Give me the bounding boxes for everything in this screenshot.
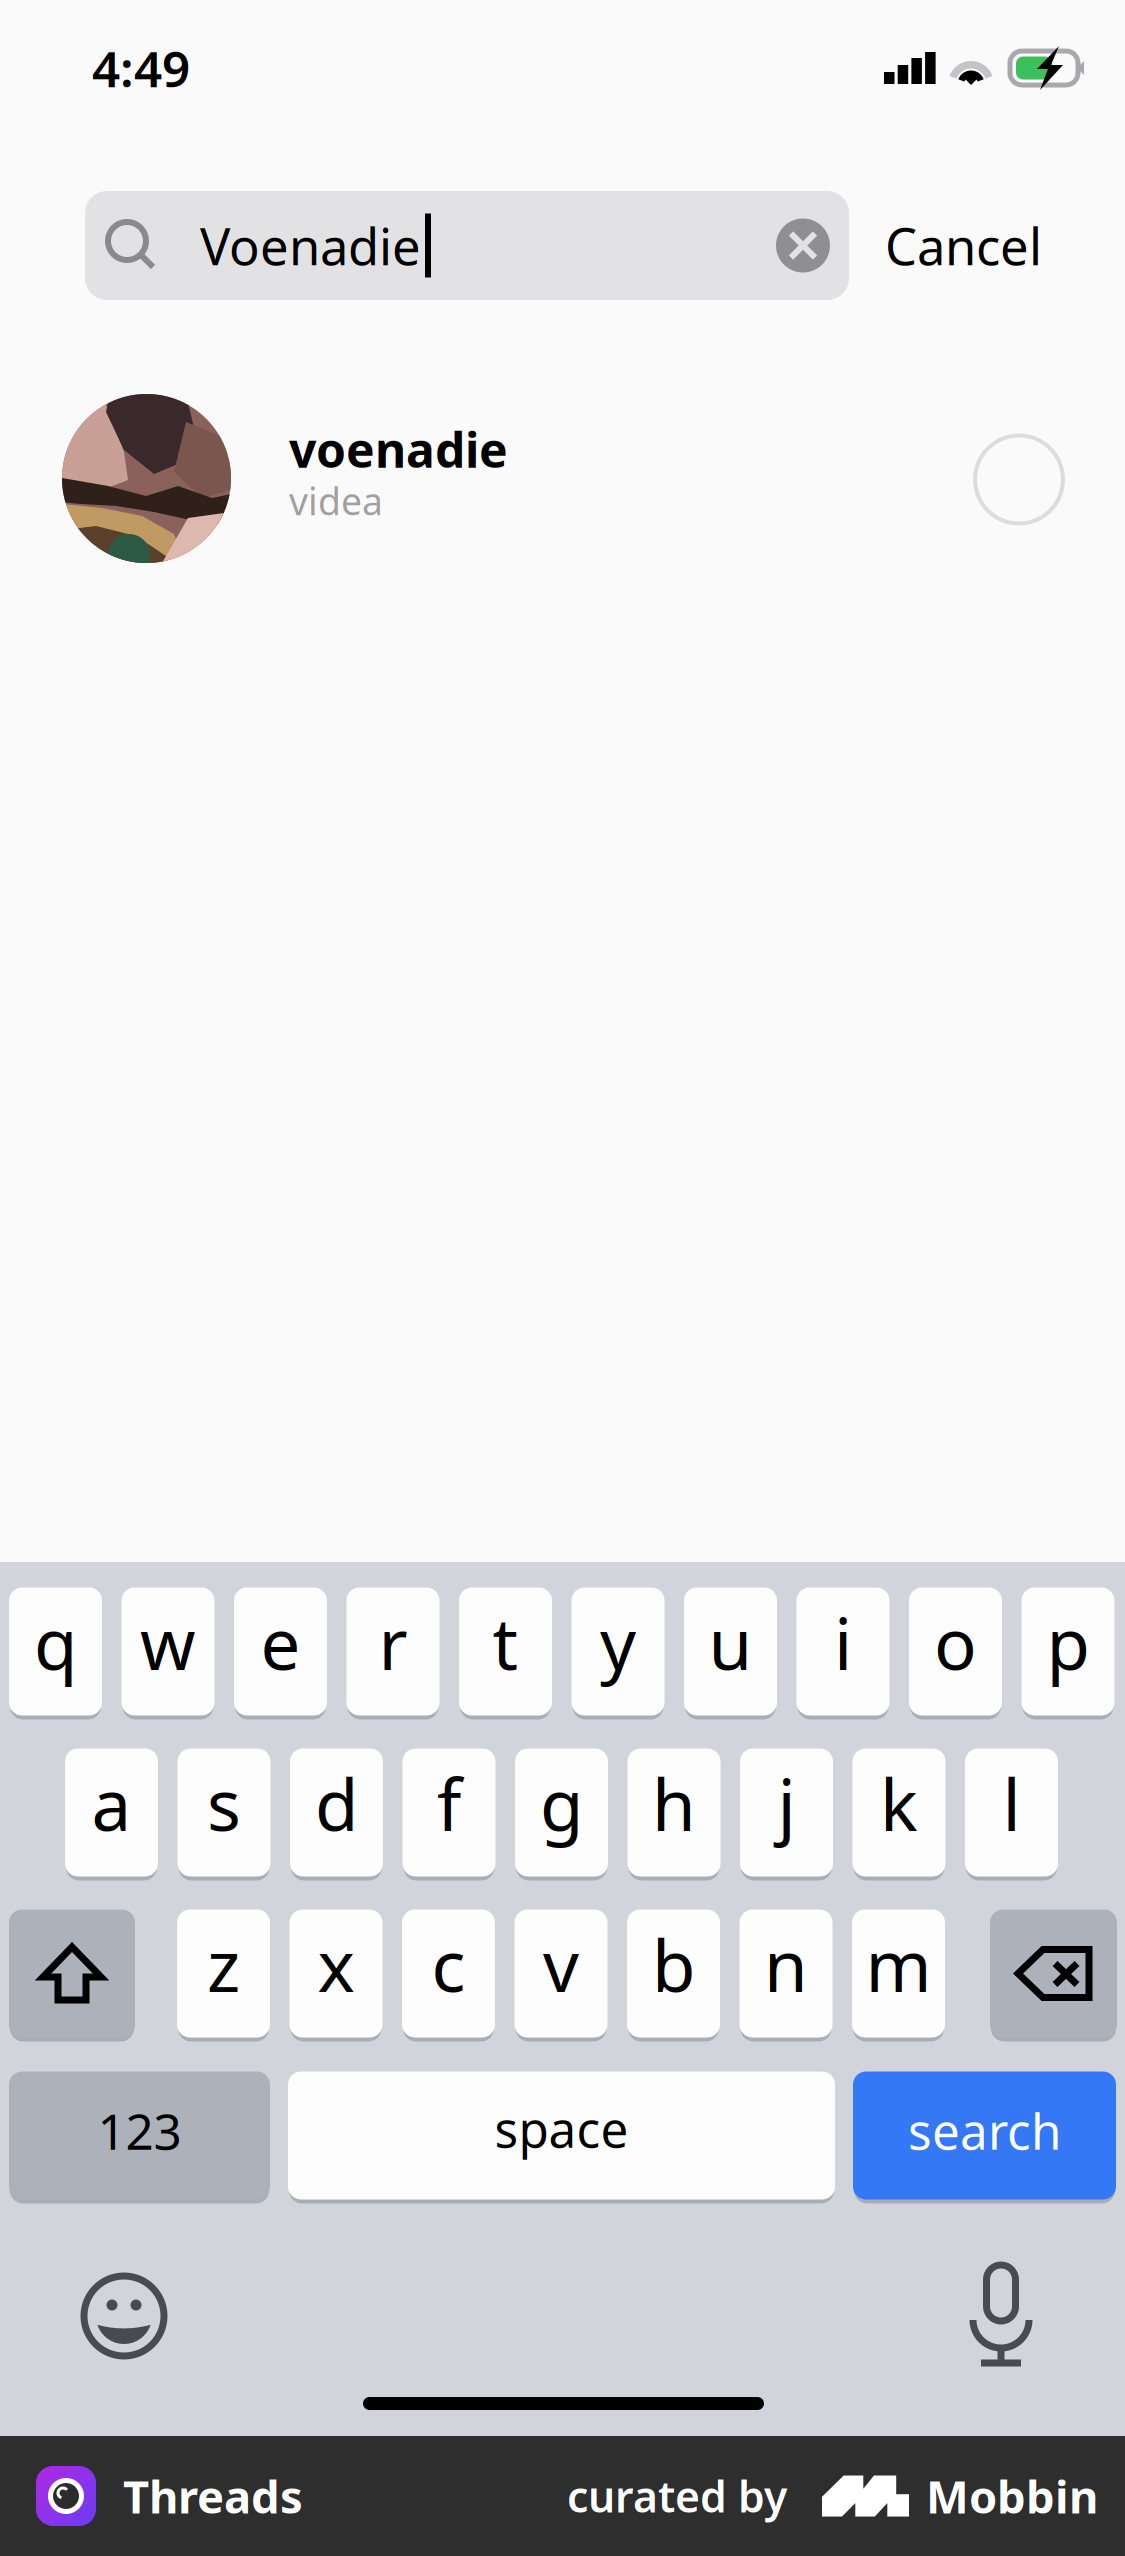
- staticText: w: [140, 1596, 196, 1689]
- button[interactable]: t: [459, 1585, 552, 1717]
- staticText: i: [834, 1596, 852, 1689]
- staticText: Cancel: [885, 212, 1042, 279]
- staticText: s: [207, 1757, 241, 1850]
- staticText: e: [260, 1596, 300, 1689]
- button[interactable]: space: [288, 2069, 835, 2201]
- staticText: h: [652, 1757, 696, 1850]
- staticText: Mobbin: [926, 2466, 1098, 2526]
- staticText: videa: [289, 476, 383, 526]
- staticText: l: [1002, 1757, 1020, 1850]
- button[interactable]: f: [402, 1746, 495, 1878]
- staticText: n: [764, 1918, 808, 2011]
- button[interactable]: e: [234, 1585, 327, 1717]
- button[interactable]: y: [571, 1585, 664, 1717]
- button[interactable]: Cancel: [849, 191, 1125, 300]
- button[interactable]: q: [9, 1585, 102, 1717]
- button[interactable]: o: [909, 1585, 1002, 1717]
- staticText: voenadie: [289, 417, 508, 481]
- button[interactable]: g: [515, 1746, 608, 1878]
- button[interactable]: Dictation: [972, 2266, 1030, 2366]
- button[interactable]: x: [289, 1907, 382, 2039]
- button[interactable]: r: [346, 1585, 439, 1717]
- button[interactable]: k: [852, 1746, 945, 1878]
- staticText: d: [315, 1757, 358, 1850]
- staticText: x: [317, 1918, 354, 2011]
- staticText: q: [34, 1596, 77, 1689]
- button[interactable]: l: [965, 1746, 1058, 1878]
- staticText: curated by: [567, 2468, 787, 2524]
- button[interactable]: Emoji keyboard: [81, 2273, 167, 2359]
- staticText: b: [652, 1918, 695, 2011]
- button[interactable]: Delete: [990, 1907, 1117, 2039]
- staticText: p: [1046, 1596, 1089, 1689]
- staticText: m: [865, 1918, 931, 2011]
- staticText: Threads: [123, 2466, 303, 2526]
- staticText: g: [540, 1757, 583, 1850]
- button[interactable]: s: [177, 1746, 270, 1878]
- staticText: o: [934, 1596, 977, 1689]
- button[interactable]: m: [852, 1907, 945, 2039]
- button[interactable]: b: [627, 1907, 720, 2039]
- button[interactable]: z: [177, 1907, 270, 2039]
- staticText: y: [600, 1596, 636, 1689]
- button[interactable]: c: [402, 1907, 495, 2039]
- staticText: Voenadie: [200, 212, 421, 279]
- button[interactable]: a: [65, 1746, 158, 1878]
- staticText: 123: [97, 2098, 181, 2163]
- button[interactable]: 123: [9, 2069, 270, 2201]
- button[interactable]: v: [514, 1907, 607, 2039]
- button[interactable]: n: [739, 1907, 832, 2039]
- staticText: a: [91, 1757, 131, 1850]
- staticText: j: [777, 1757, 795, 1850]
- staticText: t: [492, 1596, 518, 1689]
- button[interactable]: Clear text: [761, 195, 845, 295]
- staticText: r: [378, 1596, 407, 1689]
- staticText: u: [708, 1596, 752, 1689]
- staticText: f: [437, 1757, 461, 1850]
- button[interactable]: u: [684, 1585, 777, 1717]
- staticText: 4:49: [92, 35, 190, 101]
- button[interactable]: i: [796, 1585, 889, 1717]
- staticText: k: [880, 1757, 918, 1850]
- button[interactable]: search: [853, 2069, 1116, 2201]
- staticText: c: [431, 1918, 465, 2011]
- button[interactable]: d: [290, 1746, 383, 1878]
- button[interactable]: h: [627, 1746, 720, 1878]
- button[interactable]: w: [121, 1585, 214, 1717]
- staticText: z: [207, 1918, 240, 2011]
- button[interactable]: p: [1021, 1585, 1114, 1717]
- staticText: v: [543, 1918, 579, 2011]
- staticText: space: [494, 2096, 628, 2161]
- button[interactable]: voenadie: [0, 394, 1125, 563]
- staticText: search: [908, 2098, 1061, 2163]
- button[interactable]: j: [740, 1746, 833, 1878]
- button[interactable]: Shift: [9, 1907, 135, 2039]
